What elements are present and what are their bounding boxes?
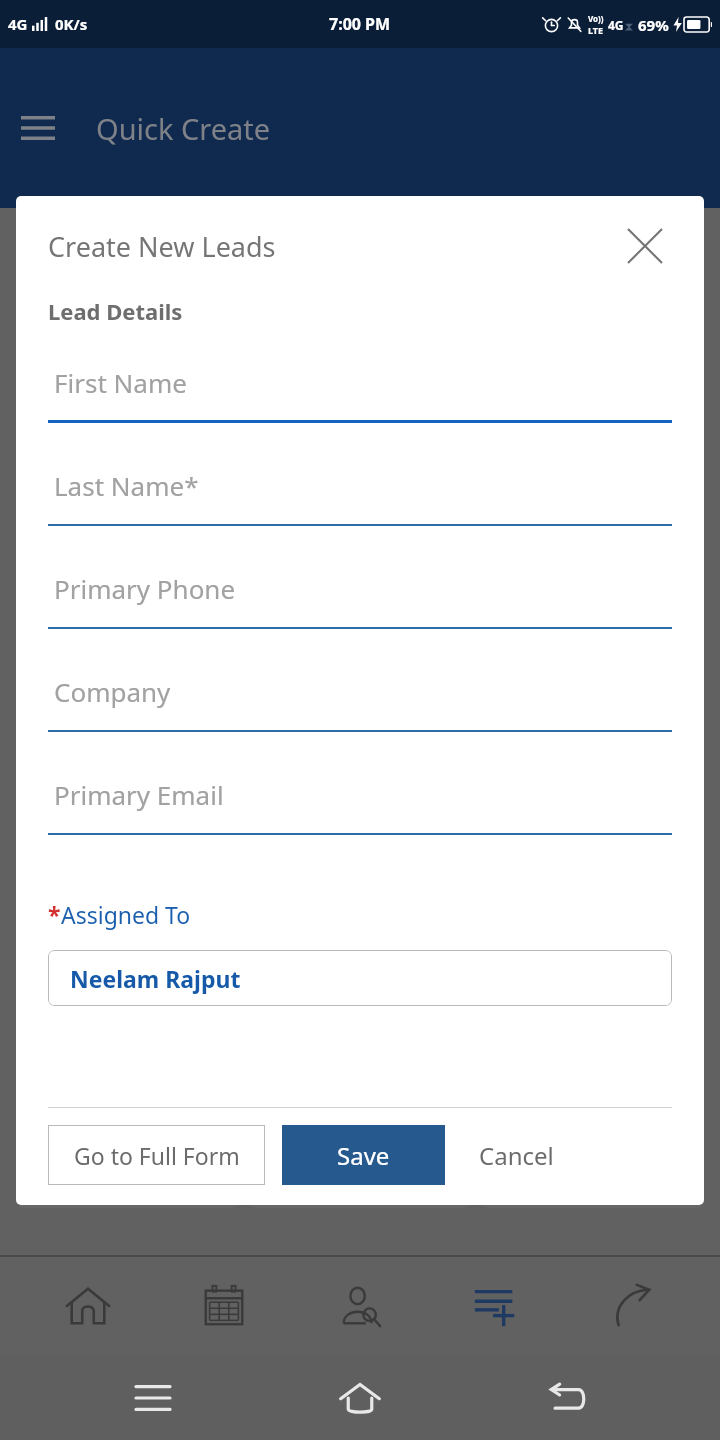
button[interactable]: Last Name* — [48, 461, 672, 564]
staticText: Contracts — [314, 999, 406, 1026]
staticText: Go to Full Form — [74, 1140, 240, 1171]
staticText: Invoices — [89, 829, 168, 856]
button[interactable]: First Name — [48, 358, 672, 461]
button[interactable]: Services — [18, 888, 238, 1038]
button[interactable]: Goals — [482, 888, 702, 1038]
button[interactable]: Recent apps — [98, 1356, 208, 1440]
staticText: 4G — [608, 17, 624, 33]
button[interactable]: Primary Phone — [48, 564, 672, 667]
staticText: Assigned To — [61, 899, 191, 930]
button[interactable]: Close — [618, 219, 672, 273]
staticText: Campaigns — [539, 829, 646, 856]
button[interactable]: Calendar — [176, 1263, 272, 1349]
staticText: Company — [54, 674, 171, 709]
button[interactable]: Cancel — [467, 1125, 566, 1185]
button[interactable]: Share — [584, 1263, 680, 1349]
button[interactable]: Invoices — [18, 718, 238, 868]
button[interactable]: Accounts — [18, 208, 238, 358]
button[interactable]: Home — [40, 1263, 136, 1349]
staticText: Save — [337, 1139, 390, 1172]
button[interactable]: Home — [305, 1356, 415, 1440]
staticText: Accounts — [84, 319, 172, 346]
button[interactable]: Back — [513, 1356, 623, 1440]
button[interactable]: Orders — [482, 378, 702, 528]
button[interactable]: Tickets — [482, 1058, 702, 1208]
staticText: Services — [89, 999, 167, 1026]
button[interactable]: Campaigns — [482, 718, 702, 868]
staticText: Opportunities — [61, 489, 195, 516]
staticText: CTMobile API Lo — [283, 1169, 438, 1196]
button[interactable]: Cases — [18, 548, 238, 698]
button[interactable]: Save — [282, 1125, 445, 1185]
button[interactable]: Activities — [250, 548, 470, 698]
button[interactable]: Open navigation menu — [12, 102, 64, 154]
staticText: Goals — [565, 999, 619, 1026]
button[interactable]: Reports — [482, 548, 702, 698]
staticText: IP Blocking — [75, 1169, 182, 1196]
button[interactable]: Go to Full Form — [48, 1125, 265, 1185]
button[interactable]: Contacts — [250, 208, 470, 358]
staticText: Last Name* — [54, 468, 199, 503]
button[interactable]: Contracts — [250, 888, 470, 1038]
button[interactable]: Primary Email — [48, 770, 672, 873]
staticText: Lead Details — [48, 296, 183, 326]
button[interactable]: CTMobile API Lo — [250, 1058, 470, 1208]
staticText: Vo)) — [588, 13, 604, 24]
button[interactable]: Quotes — [250, 378, 470, 528]
staticText: * — [48, 899, 61, 930]
staticText: Cancel — [479, 1139, 554, 1172]
button[interactable]: Quick create — [448, 1263, 544, 1349]
staticText: 69% — [638, 15, 669, 35]
staticText: Quick Create — [96, 109, 271, 148]
button[interactable]: IP Blocking — [18, 1058, 238, 1208]
staticText: Neelam Rajput — [70, 963, 241, 994]
staticText: Products — [318, 829, 403, 856]
button[interactable]: Company — [48, 667, 672, 770]
staticText: LTE — [588, 24, 604, 36]
button[interactable]: Products — [250, 718, 470, 868]
staticText: Primary Phone — [54, 571, 236, 606]
button[interactable]: Leads — [482, 208, 702, 358]
staticText: First Name — [54, 365, 187, 400]
staticText: 0K/s — [55, 14, 88, 34]
staticText: Primary Email — [54, 777, 224, 812]
button[interactable]: Neelam Rajput — [48, 950, 672, 1006]
button[interactable]: Opportunities — [18, 378, 238, 528]
staticText: 7:00 PM — [329, 13, 391, 35]
button[interactable]: Search contacts — [312, 1263, 408, 1349]
staticText: Create New Leads — [48, 228, 276, 265]
staticText: 4G — [8, 14, 28, 34]
